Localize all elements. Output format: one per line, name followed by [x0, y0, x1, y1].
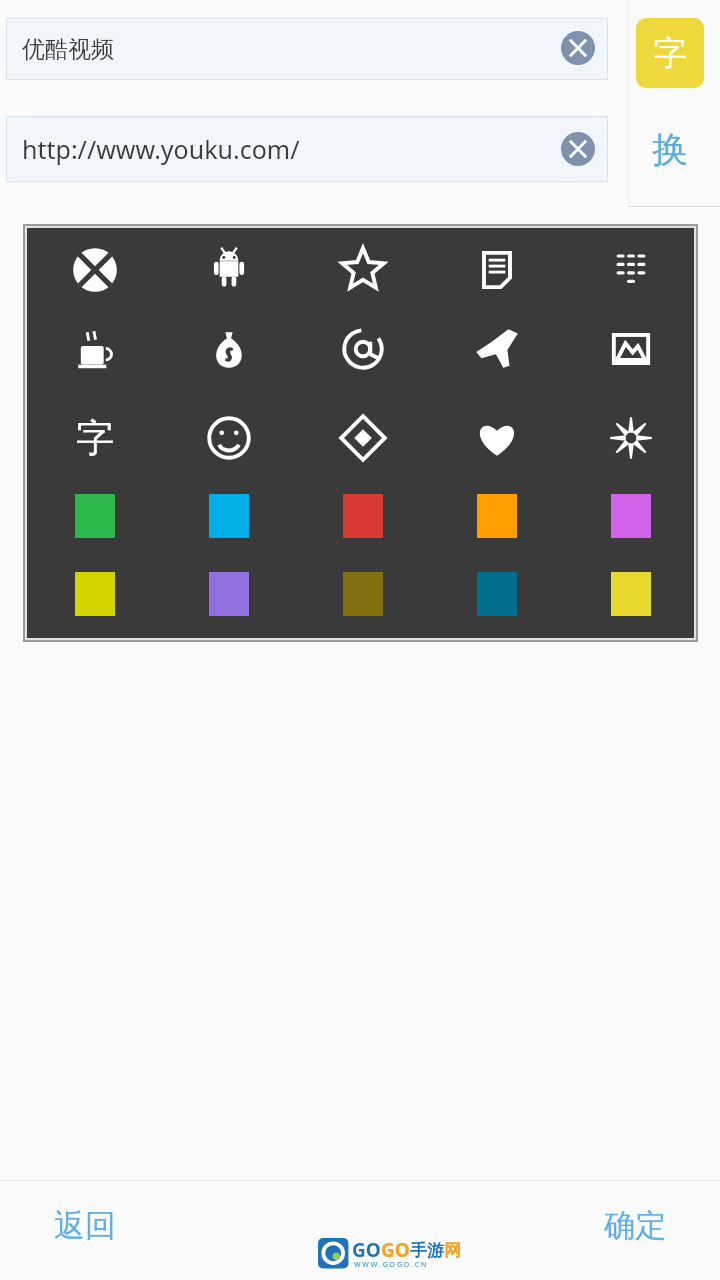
button[interactable]: Heart — [467, 408, 527, 468]
button[interactable]: 换 — [636, 116, 704, 182]
staticText: W W W . G O G O . C N — [354, 1260, 427, 1270]
staticText: http://www.youku.com/ — [22, 132, 300, 166]
button[interactable]: http://www.youku.com/ — [6, 116, 608, 182]
button[interactable]: Image — [601, 319, 661, 379]
button[interactable]: Text — [65, 408, 125, 468]
button[interactable]: 优酷视频 — [6, 18, 608, 80]
button[interactable]: 确定 — [580, 1196, 690, 1254]
staticText: 返回 — [54, 1206, 116, 1245]
button[interactable]: Note — [467, 240, 527, 300]
button[interactable]: Coffee — [65, 319, 125, 379]
button[interactable]: List — [601, 240, 661, 300]
staticText: 网 — [444, 1240, 461, 1261]
button[interactable]: Star — [333, 240, 393, 300]
button[interactable]: Airplane — [467, 319, 527, 379]
staticText: 优酷视频 — [22, 35, 114, 64]
button[interactable]: Burst — [601, 408, 661, 468]
staticText: GO — [381, 1237, 410, 1263]
button[interactable]: Diamond — [333, 408, 393, 468]
staticText: 确定 — [604, 1206, 666, 1245]
button[interactable]: 返回 — [30, 1196, 140, 1254]
button[interactable]: 字 — [636, 18, 704, 88]
button[interactable]: Money — [199, 319, 259, 379]
button[interactable]: At sign — [333, 319, 393, 379]
staticText: 字 — [76, 414, 114, 462]
button[interactable]: Smiley — [199, 408, 259, 468]
button[interactable]: Xbox — [65, 240, 125, 300]
staticText: 字 — [653, 32, 687, 75]
staticText: GO — [352, 1237, 381, 1263]
button[interactable]: Clear — [561, 132, 595, 166]
button[interactable]: Clear — [561, 31, 595, 65]
staticText: 手游 — [410, 1240, 444, 1261]
staticText: 换 — [652, 127, 688, 172]
button[interactable]: Android — [199, 240, 259, 300]
